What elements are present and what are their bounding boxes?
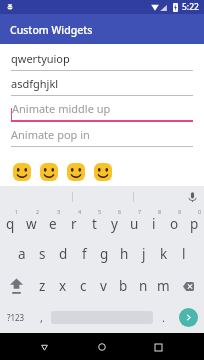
button[interactable]: Shift	[0, 270, 32, 302]
button[interactable]: Smiley emoji	[13, 163, 31, 181]
button[interactable]: 0	[184, 206, 204, 238]
button[interactable]: 9	[164, 206, 184, 238]
staticText: n	[139, 277, 148, 295]
button[interactable]: 5	[84, 206, 104, 238]
button[interactable]: z	[32, 270, 53, 302]
staticText: d	[59, 245, 68, 263]
staticText: u	[130, 215, 139, 233]
staticText: t	[92, 215, 97, 233]
button[interactable]: j	[134, 238, 154, 270]
staticText: g	[100, 245, 109, 263]
button[interactable]: Backspace	[173, 270, 204, 302]
button[interactable]: x	[53, 270, 73, 302]
button[interactable]: f	[74, 238, 94, 270]
staticText: 7	[138, 208, 142, 215]
button[interactable]: g	[94, 238, 114, 270]
staticText: l	[182, 245, 186, 263]
staticText: s	[39, 245, 46, 263]
staticText: Animate pop in	[11, 127, 90, 142]
button[interactable]: 7	[124, 206, 144, 238]
button[interactable]: 8	[144, 206, 164, 238]
button[interactable]: k	[154, 238, 174, 270]
staticText: z	[39, 277, 46, 295]
button[interactable]: ,	[31, 302, 51, 333]
button[interactable]: Smiley emoji	[67, 163, 85, 181]
other: Voice input	[186, 192, 199, 202]
staticText: 8	[158, 208, 162, 215]
staticText: w	[26, 215, 37, 233]
button[interactable]: b	[113, 270, 133, 302]
staticText: asdfghjkl	[11, 76, 59, 91]
staticText: Custom Widgets	[10, 23, 93, 37]
button[interactable]: 2	[21, 206, 42, 238]
staticText: ?123	[7, 312, 25, 323]
staticText: e	[49, 215, 57, 233]
button[interactable]: s	[32, 238, 53, 270]
staticText: 5	[98, 208, 102, 215]
staticText: 2	[36, 208, 40, 215]
button[interactable]: d	[53, 238, 74, 270]
staticText: p	[190, 215, 199, 233]
staticText: 6	[118, 208, 122, 215]
staticText: o	[170, 215, 179, 233]
staticText: x	[59, 277, 67, 295]
staticText: j	[142, 245, 146, 263]
staticText: q	[6, 215, 15, 233]
button[interactable]: Enter	[173, 302, 204, 333]
staticText: 4	[78, 208, 82, 215]
staticText: Animate middle up	[12, 101, 111, 116]
staticText: r	[71, 215, 77, 233]
button[interactable]: 1	[0, 206, 21, 238]
button[interactable]: c	[73, 270, 93, 302]
staticText: k	[160, 245, 168, 263]
button[interactable]: Smiley emoji	[94, 163, 112, 181]
staticText: b	[119, 277, 128, 295]
button[interactable]: 6	[104, 206, 124, 238]
staticText: m	[157, 277, 170, 295]
staticText: v	[100, 277, 107, 295]
staticText: c	[80, 277, 87, 295]
button[interactable]: m	[153, 270, 173, 302]
button[interactable]: n	[133, 270, 153, 302]
staticText: qwertyuiop	[11, 51, 70, 66]
button[interactable]: 4	[63, 206, 84, 238]
button[interactable]: Space	[51, 302, 153, 333]
staticText: h	[120, 245, 129, 263]
button[interactable]: h	[114, 238, 134, 270]
staticText: 1	[15, 208, 19, 215]
staticText: a	[18, 245, 26, 263]
button[interactable]: v	[93, 270, 113, 302]
button[interactable]: .	[153, 302, 173, 333]
staticText: 0	[198, 208, 202, 215]
staticText: 9	[178, 208, 182, 215]
button[interactable]: a	[11, 238, 32, 270]
button[interactable]: Smiley emoji	[40, 163, 58, 181]
staticText: ,	[40, 310, 43, 325]
button[interactable]: Home	[91, 336, 113, 358]
staticText: 5:22	[182, 1, 199, 13]
staticText: y	[111, 215, 118, 233]
button[interactable]: Back	[33, 336, 55, 358]
staticText: f	[82, 245, 87, 263]
button[interactable]: l	[174, 238, 194, 270]
staticText: .	[162, 310, 165, 325]
button[interactable]: 3	[42, 206, 63, 238]
button[interactable]: Recents	[147, 336, 169, 358]
staticText: 3	[57, 208, 61, 215]
staticText: i	[152, 215, 156, 233]
button[interactable]: ?123	[0, 302, 31, 333]
